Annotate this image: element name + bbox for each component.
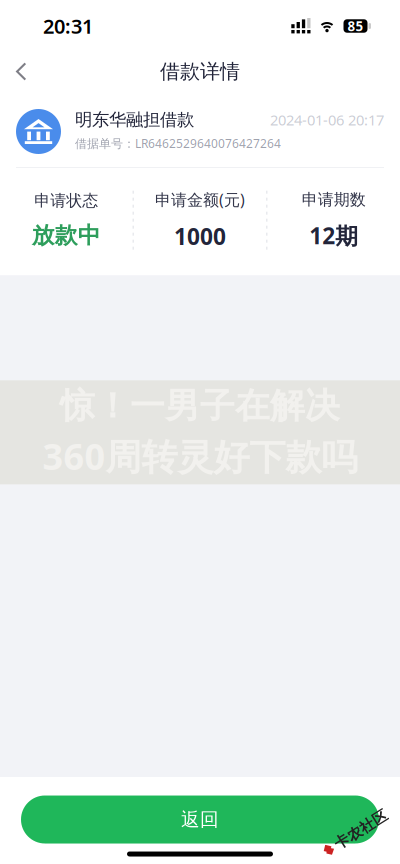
staticText: 借据单号：LR6462529640076427264 bbox=[75, 135, 281, 151]
staticText: 申请金额(元) bbox=[155, 189, 245, 210]
staticText: 卡农社区 bbox=[332, 824, 392, 842]
staticText: 惊！一男子在解决 bbox=[60, 385, 340, 427]
staticText: 返回 bbox=[181, 808, 219, 831]
staticText: 放款中 bbox=[32, 222, 101, 249]
staticText: 明东华融担借款 bbox=[75, 109, 194, 130]
staticText: 申请期数 bbox=[302, 190, 366, 209]
staticText: 12期 bbox=[309, 220, 358, 251]
staticText: 借款详情 bbox=[160, 59, 240, 84]
staticText: 2024-01-06 20:17 bbox=[270, 110, 384, 129]
button[interactable]: Back bbox=[0, 51, 40, 92]
button[interactable]: 返回 bbox=[21, 795, 379, 843]
staticText: 85 bbox=[347, 17, 363, 35]
staticText: 20:31 bbox=[43, 13, 93, 39]
staticText: 申请状态 bbox=[34, 191, 98, 211]
staticText: 360周转灵好下款吗 bbox=[42, 432, 357, 480]
staticText: 1000 bbox=[174, 221, 226, 251]
